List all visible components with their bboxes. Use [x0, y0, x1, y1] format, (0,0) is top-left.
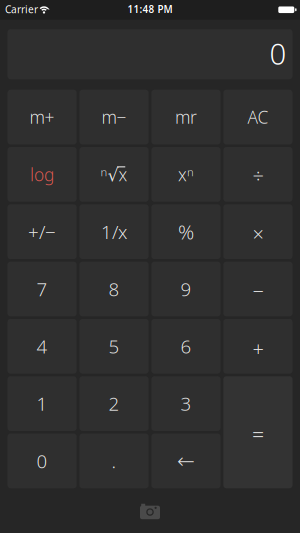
button[interactable]: . [79, 434, 149, 488]
button[interactable]: 3 [151, 376, 221, 431]
staticText: 11:48 PM [127, 2, 172, 16]
staticText: mr [175, 106, 197, 129]
button[interactable]: 9 [151, 262, 221, 316]
staticText: 8 [108, 277, 119, 301]
button[interactable]: ÷ [223, 147, 293, 202]
button[interactable]: 0 [7, 434, 77, 488]
staticText: 1/x [101, 219, 127, 244]
staticText: − [252, 278, 263, 304]
staticText: 3 [180, 391, 191, 416]
button[interactable]: 7 [7, 262, 77, 316]
button[interactable]: 1/x [79, 204, 149, 259]
button[interactable]: 4 [7, 319, 77, 374]
button[interactable]: Camera [120, 496, 180, 526]
staticText: 1 [37, 391, 48, 416]
staticText: 6 [180, 334, 191, 359]
button[interactable]: xⁿ [151, 147, 221, 202]
staticText: ⁿ√x [100, 163, 127, 186]
staticText: . [111, 448, 116, 473]
button[interactable]: 6 [151, 319, 221, 374]
staticText: 7 [37, 277, 48, 301]
button[interactable]: m− [79, 90, 149, 144]
button[interactable]: log [7, 147, 77, 202]
button[interactable]: ← [151, 434, 221, 488]
staticText: AC [247, 106, 268, 129]
staticText: × [252, 220, 263, 247]
button[interactable]: % [151, 204, 221, 259]
button[interactable]: = [223, 376, 292, 488]
staticText: 2 [108, 391, 119, 416]
staticText: +/− [28, 219, 56, 244]
staticText: Carrier [5, 2, 38, 16]
staticText: m− [101, 106, 126, 129]
staticText: % [178, 218, 194, 245]
button[interactable]: mr [151, 90, 221, 144]
button[interactable]: 8 [79, 262, 149, 316]
button[interactable]: − [223, 262, 293, 316]
button[interactable]: 5 [79, 319, 149, 374]
staticText: log [30, 163, 54, 186]
button[interactable]: ⁿ√x [79, 147, 149, 202]
button[interactable]: +/− [7, 204, 77, 259]
button[interactable]: 2 [79, 376, 149, 431]
staticText: ← [177, 449, 195, 473]
button[interactable]: + [223, 319, 293, 374]
staticText: xⁿ [178, 163, 194, 186]
staticText: 4 [37, 334, 48, 359]
staticText: 0 [37, 448, 48, 473]
staticText: 5 [108, 334, 119, 359]
button[interactable]: × [223, 204, 293, 259]
staticText: ÷ [252, 162, 263, 189]
staticText: = [252, 420, 264, 448]
staticText: m+ [30, 106, 55, 129]
staticText: 0 [269, 34, 286, 73]
button[interactable]: m+ [7, 90, 77, 144]
staticText: 9 [180, 277, 191, 301]
button[interactable]: 1 [7, 376, 77, 431]
button[interactable]: AC [223, 90, 293, 144]
staticText: + [252, 335, 263, 362]
